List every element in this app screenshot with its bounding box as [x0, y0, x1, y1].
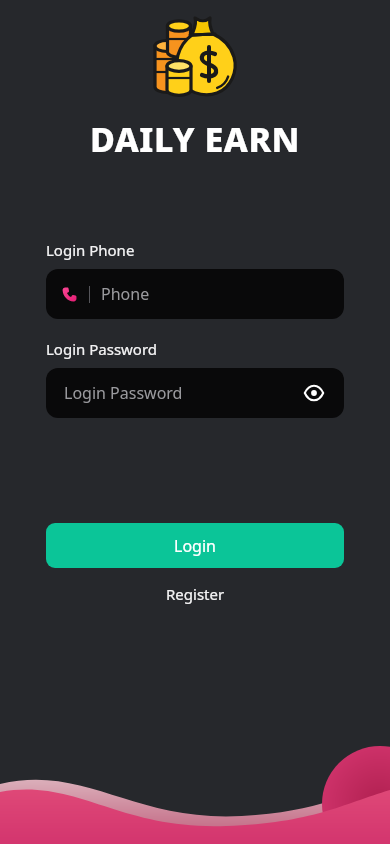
- staticText: Login: [174, 535, 216, 557]
- button[interactable]: Register: [158, 581, 233, 607]
- staticText: Phone: [101, 283, 150, 305]
- staticText: Login Phone: [46, 240, 135, 260]
- button[interactable]: Login Password: [46, 368, 344, 418]
- button[interactable]: Phone: [46, 269, 344, 319]
- button[interactable]: Show password: [302, 381, 326, 405]
- staticText: Login Password: [64, 382, 183, 404]
- staticText: DAILY EARN: [90, 116, 300, 162]
- staticText: Login Password: [46, 339, 158, 359]
- button[interactable]: Login: [46, 523, 344, 568]
- staticText: Register: [166, 584, 225, 604]
